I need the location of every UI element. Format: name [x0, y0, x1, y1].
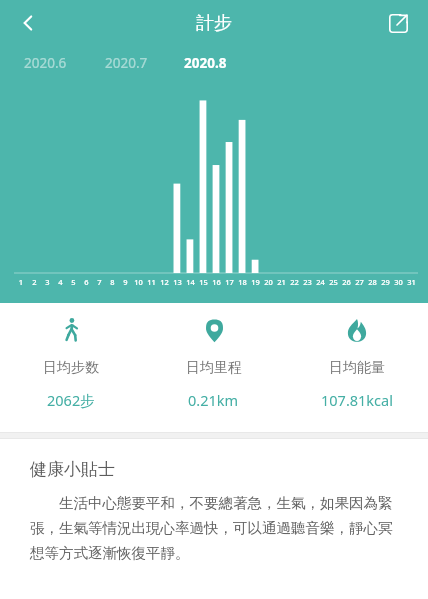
staticText: 10 [132, 277, 145, 287]
staticText: 2062步 [47, 390, 95, 410]
staticText: 日均步数 [43, 359, 99, 377]
staticText: 7 [93, 277, 106, 287]
staticText: 15 [197, 277, 210, 287]
staticText: 5 [67, 277, 80, 287]
staticText: 計步 [196, 12, 232, 35]
staticText: 30 [392, 277, 405, 287]
staticText: 29 [379, 277, 392, 287]
staticText: 27 [353, 277, 366, 287]
staticText: 22 [288, 277, 301, 287]
button[interactable]: 日均能量 [285, 315, 428, 432]
staticText: 6 [80, 277, 93, 287]
staticText: 24 [314, 277, 327, 287]
staticText: 17 [223, 277, 236, 287]
staticText: 4 [54, 277, 67, 287]
staticText: 1 [14, 277, 28, 287]
staticText: 31 [405, 277, 418, 287]
staticText: 20 [262, 277, 275, 287]
staticText: 日均能量 [329, 359, 385, 377]
button[interactable]: 2020.8 [182, 52, 229, 74]
staticText: 107.81kcal [321, 390, 393, 410]
staticText: 12 [158, 277, 171, 287]
staticText: 14 [184, 277, 197, 287]
staticText: 健康小貼士 [30, 459, 115, 480]
staticText: 2020.6 [24, 54, 67, 72]
staticText: 18 [236, 277, 249, 287]
staticText: 0.21km [188, 390, 239, 410]
staticText: 26 [340, 277, 353, 287]
staticText: 19 [249, 277, 262, 287]
staticText: 28 [366, 277, 379, 287]
staticText: 2020.8 [184, 54, 227, 72]
button[interactable]: 2020.6 [22, 52, 69, 74]
staticText: 23 [301, 277, 314, 287]
staticText: 9 [119, 277, 132, 287]
staticText: 11 [145, 277, 158, 287]
button[interactable]: 2020.7 [103, 52, 150, 74]
staticText: 2020.7 [105, 54, 148, 72]
staticText: 21 [275, 277, 288, 287]
button[interactable]: Share [378, 3, 418, 43]
staticText: 25 [327, 277, 340, 287]
button[interactable]: 日均步数 [0, 315, 142, 432]
staticText: 生活中心態要平和，不要總著急，生氣，如果因為緊張，生氣等情況出現心率過快，可以通… [30, 492, 404, 562]
staticText: 13 [171, 277, 184, 287]
button[interactable]: Back [8, 3, 48, 43]
button[interactable]: 日均里程 [142, 315, 285, 432]
staticText: 8 [106, 277, 119, 287]
staticText: 日均里程 [186, 359, 242, 377]
staticText: 3 [41, 277, 54, 287]
staticText: 2 [28, 277, 41, 287]
staticText: 16 [210, 277, 223, 287]
